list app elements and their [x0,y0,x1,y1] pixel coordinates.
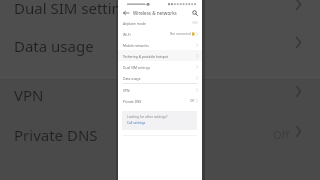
staticText: Data usage [14,36,94,56]
button[interactable]: Wi-Fi [118,28,202,39]
button[interactable]: Airplane mode [118,17,202,28]
staticText: Tethering & portable hotspot [123,54,168,58]
staticText: Airplane mode [123,21,146,25]
button[interactable]: Dual SIM settings [118,61,202,72]
staticText: Data usage [123,76,141,80]
staticText: Mobile networks [123,43,149,47]
button[interactable]: Private DNS [118,95,202,106]
button[interactable]: Mobile networks [118,39,202,50]
staticText: VPN [123,88,130,92]
staticText: Wi-Fi [123,32,131,36]
staticText: Off [273,127,290,142]
button[interactable]: Back [121,8,130,17]
button[interactable]: VPN [118,84,202,95]
button[interactable]: VPN [0,78,320,108]
button[interactable]: Dual SIM settings [0,0,320,21]
button[interactable]: Data usage [118,72,202,83]
staticText: Dual SIM settings [14,0,138,18]
button[interactable]: Search [190,8,199,17]
staticText: Looking for other settings? [127,115,168,119]
staticText: Private DNS [123,99,142,103]
staticText: Dual SIM settings [123,65,151,69]
staticText: Private DNS [14,125,98,145]
button[interactable]: Private DNS [0,118,320,148]
staticText: Wireless & networks [133,10,177,16]
staticText: Not connected [170,32,191,36]
button[interactable]: Call settings [127,121,146,125]
staticText: Off [190,99,195,103]
staticText: VPN [14,85,44,105]
button[interactable]: Tethering & portable hotspot [118,50,202,61]
button[interactable]: Data usage [0,29,320,59]
